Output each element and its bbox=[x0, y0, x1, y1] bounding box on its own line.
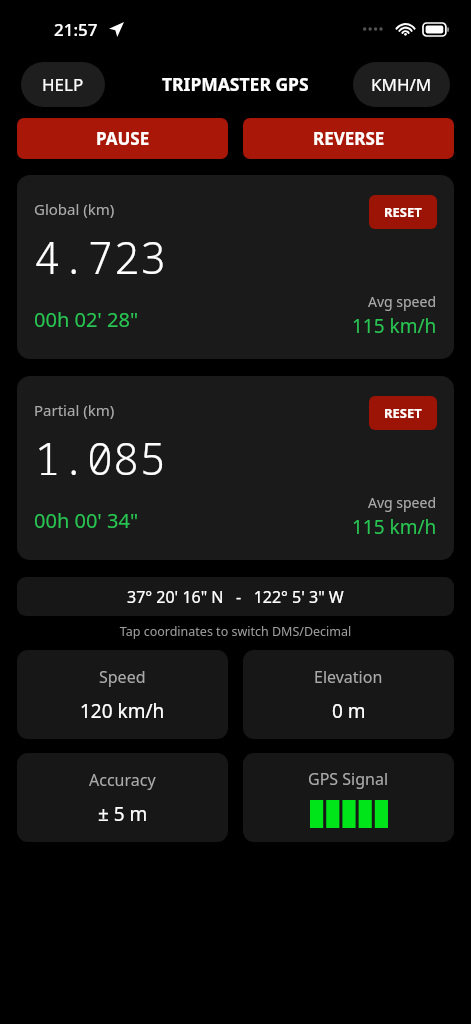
staticText: Speed bbox=[99, 666, 146, 688]
staticText: REVERSE bbox=[313, 127, 385, 150]
staticText: 00h 02' 28" bbox=[34, 306, 139, 333]
staticText: Global (km) bbox=[34, 199, 115, 219]
staticText: 120 km/h bbox=[80, 698, 165, 724]
staticText: RESET bbox=[384, 203, 422, 221]
button[interactable]: 37° 20' 16" N - 122° 5' 3" W bbox=[17, 577, 454, 616]
staticText: KMH/M bbox=[371, 73, 432, 96]
staticText: Partial (km) bbox=[34, 400, 115, 420]
staticText: Elevation bbox=[314, 666, 383, 688]
button[interactable]: Speed bbox=[17, 650, 228, 739]
staticText: HELP bbox=[42, 73, 84, 96]
button[interactable]: HELP bbox=[21, 62, 105, 107]
button[interactable]: Elevation bbox=[243, 650, 454, 739]
button[interactable]: PAUSE bbox=[17, 118, 228, 159]
button[interactable]: RESET bbox=[369, 195, 437, 229]
button[interactable]: GPS Signal bbox=[243, 753, 454, 842]
button[interactable]: REVERSE bbox=[243, 118, 454, 159]
staticText: 4.723 bbox=[34, 227, 166, 287]
staticText: ± 5 m bbox=[98, 801, 148, 827]
staticText: Avg speed bbox=[368, 292, 437, 311]
staticText: 115 km/h bbox=[352, 514, 437, 540]
staticText: Accuracy bbox=[89, 769, 156, 791]
staticText: 37° 20' 16" N - 122° 5' 3" W bbox=[127, 586, 344, 608]
staticText: RESET bbox=[384, 404, 422, 422]
staticText: Avg speed bbox=[368, 493, 437, 512]
staticText: Tap coordinates to switch DMS/Decimal bbox=[0, 623, 471, 640]
staticText: 115 km/h bbox=[352, 313, 437, 339]
staticText: 0 m bbox=[332, 698, 366, 724]
button[interactable]: Accuracy bbox=[17, 753, 228, 842]
button[interactable]: RESET bbox=[369, 396, 437, 430]
staticText: TRIPMASTER GPS bbox=[162, 72, 309, 96]
staticText: 1.085 bbox=[34, 428, 166, 488]
button[interactable]: KMH/M bbox=[353, 62, 450, 107]
staticText: PAUSE bbox=[96, 127, 150, 150]
staticText: 21:57 bbox=[54, 18, 98, 41]
staticText: GPS Signal bbox=[308, 768, 389, 790]
staticText: 00h 00' 34" bbox=[34, 507, 139, 534]
